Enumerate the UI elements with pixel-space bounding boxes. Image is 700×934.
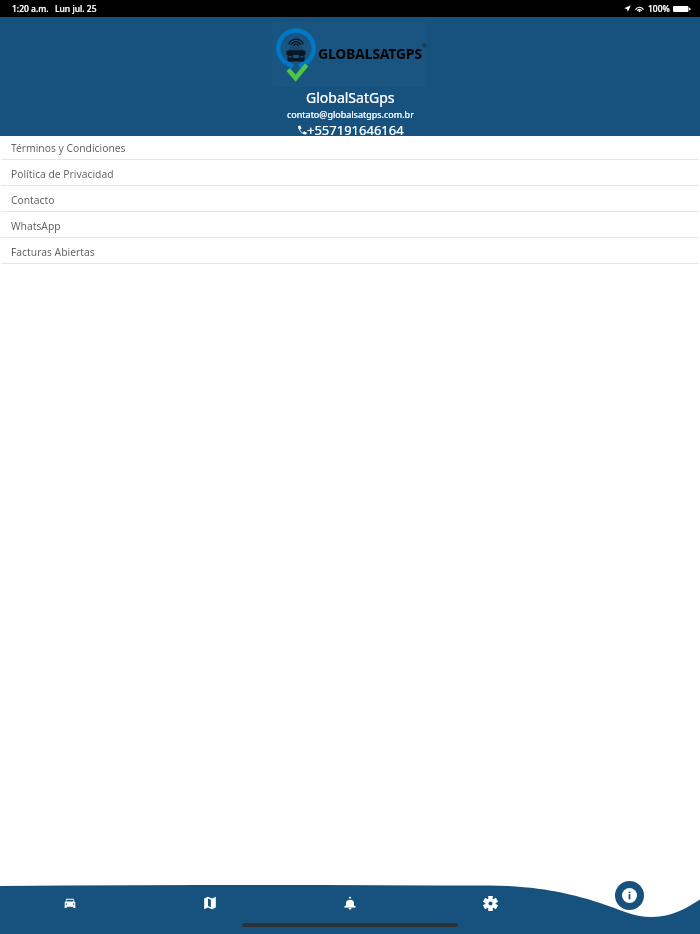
button[interactable]: Map	[140, 876, 280, 930]
button[interactable]: Contacto	[0, 188, 700, 214]
staticText: GlobalSatGps	[306, 88, 395, 107]
staticText: Lun jul. 25	[55, 3, 97, 15]
button[interactable]: Facturas Abiertas	[0, 240, 700, 266]
button[interactable]: Política de Privacidad	[0, 162, 700, 188]
staticText: 1:20 a.m.	[12, 3, 49, 15]
staticText: Facturas Abiertas	[11, 245, 95, 259]
staticText: ®	[422, 42, 427, 50]
staticText: Términos y Condiciones	[11, 141, 126, 155]
staticText: +557191646164	[307, 121, 404, 139]
button[interactable]: Términos y Condiciones	[0, 136, 700, 162]
button[interactable]: Vehicles	[0, 876, 140, 930]
staticText: 100%	[648, 3, 670, 15]
staticText: WhatsApp	[11, 219, 61, 233]
staticText: contato@globalsatgps.com.br	[287, 108, 414, 120]
button[interactable]: Information	[615, 881, 644, 910]
button[interactable]: Settings	[420, 876, 560, 930]
button[interactable]: WhatsApp	[0, 214, 700, 240]
staticText: GLOBALSATGPS	[318, 44, 422, 63]
staticText: Contacto	[11, 193, 55, 207]
button[interactable]: Notifications	[280, 876, 420, 930]
staticText: Política de Privacidad	[11, 167, 114, 181]
